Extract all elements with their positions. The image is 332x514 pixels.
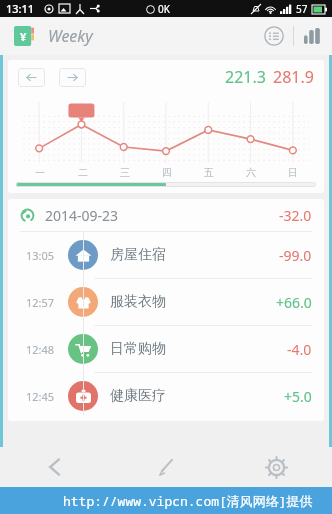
button[interactable]: 2014-09-23	[8, 199, 324, 231]
button[interactable]: 12:45	[8, 373, 324, 419]
staticText: 日常购物	[110, 340, 166, 358]
staticText: +5.0	[284, 387, 312, 406]
staticText: 四	[162, 166, 172, 179]
staticText: 12:45	[26, 389, 62, 404]
staticText: 0K	[158, 2, 170, 16]
staticText: 一	[35, 166, 45, 179]
button[interactable]: 13:05	[8, 232, 324, 278]
staticText: 健康医疗	[110, 387, 166, 405]
staticText: -32.0	[279, 206, 312, 225]
staticText: 12:57	[26, 295, 62, 310]
button[interactable]: Next week	[59, 68, 86, 87]
staticText: 13:11	[6, 1, 35, 16]
staticText: 13:05	[26, 248, 62, 263]
staticText: 2014-09-23	[45, 206, 119, 225]
staticText: 六	[246, 166, 256, 179]
staticText: 五	[204, 166, 214, 179]
button[interactable]: Statistics	[294, 17, 332, 55]
staticText: http://www.vipcn.com[清风网络]提供	[63, 492, 313, 510]
button[interactable]: Previous week	[18, 68, 45, 87]
staticText: Weeky	[48, 25, 93, 47]
staticText: 服装衣物	[110, 293, 166, 311]
button[interactable]: 12:48	[8, 326, 324, 372]
staticText: 57	[296, 2, 308, 16]
staticText: 三	[120, 166, 130, 179]
staticText: 日	[288, 166, 298, 179]
button[interactable]: 12:57	[8, 279, 324, 325]
staticText: 12:48	[26, 342, 62, 357]
staticText: 221.3	[225, 66, 266, 88]
staticText: 281.9	[273, 66, 314, 88]
button[interactable]: Back	[0, 447, 110, 487]
staticText: ¥	[20, 29, 27, 44]
staticText: -99.0	[279, 246, 312, 265]
staticText: -4.0	[287, 340, 312, 359]
button[interactable]: List	[255, 17, 293, 55]
button[interactable]: Settings	[221, 447, 332, 487]
staticText: 房屋住宿	[110, 246, 166, 264]
button[interactable]: Edit	[110, 447, 221, 487]
staticText: 二	[78, 166, 88, 179]
staticText: +66.0	[276, 293, 312, 312]
